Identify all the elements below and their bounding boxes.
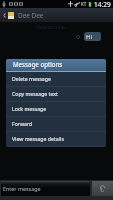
button[interactable]: Attach — [92, 181, 113, 196]
staticText: Forward — [12, 120, 33, 127]
staticText: View message details — [12, 135, 64, 142]
button[interactable]: Forward — [6, 117, 106, 132]
staticText: Enter message — [3, 185, 41, 192]
button[interactable]: View message details — [6, 132, 106, 147]
staticText: Copy message text — [12, 90, 58, 97]
button[interactable]: Navigate up — [0, 8, 8, 22]
staticText: Delete message — [12, 75, 51, 82]
staticText: 10/05/2013 Thu — [35, 25, 66, 31]
button[interactable]: Copy message text — [6, 87, 106, 102]
button[interactable]: Lock message — [6, 102, 106, 117]
button[interactable]: Enter message — [1, 181, 90, 196]
staticText: Hi — [86, 33, 92, 41]
button[interactable]: Delete message — [6, 72, 106, 87]
staticText: Message options — [13, 60, 63, 68]
staticText: 14:29 — [94, 0, 111, 8]
staticText: KT — [81, 1, 87, 7]
staticText: Dee Dee — [18, 11, 44, 20]
staticText: Lock message — [12, 105, 47, 112]
